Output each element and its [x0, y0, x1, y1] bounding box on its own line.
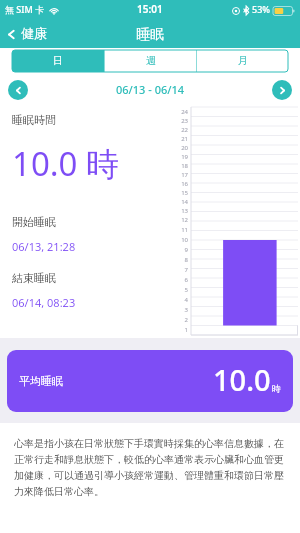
staticText: 12	[172, 216, 188, 224]
staticText: 18	[172, 162, 188, 170]
staticText: 11	[172, 226, 188, 234]
staticText: 2	[172, 316, 188, 324]
staticText: 19	[172, 153, 188, 161]
staticText: 24	[172, 108, 188, 116]
staticText: 53%	[252, 5, 270, 16]
staticText: 06/13 - 06/14	[116, 84, 185, 97]
staticText: 健康	[21, 26, 47, 42]
staticText: 結束睡眠	[12, 272, 56, 285]
button[interactable]: Previous period	[8, 80, 28, 100]
staticText: 14	[172, 198, 188, 206]
staticText: 開始睡眠	[12, 216, 56, 229]
staticText: 睡眠	[136, 26, 164, 43]
staticText: 10	[172, 236, 188, 244]
staticText: 8	[172, 256, 188, 264]
staticText: 7	[172, 266, 188, 274]
staticText: 21	[172, 135, 188, 143]
staticText: 22	[172, 126, 188, 134]
staticText: 日	[53, 55, 63, 67]
staticText: 20	[172, 144, 188, 152]
staticText: 15:01	[137, 4, 163, 16]
button[interactable]: Next period	[272, 80, 292, 100]
staticText: 9	[172, 246, 188, 254]
staticText: 4	[172, 296, 188, 304]
staticText: 15	[172, 189, 188, 197]
staticText: 平均睡眠	[19, 375, 63, 388]
button[interactable]: 月	[197, 50, 288, 72]
button[interactable]: 日	[12, 50, 104, 72]
staticText: 06/13, 21:28	[12, 241, 76, 254]
staticText: 23	[172, 117, 188, 125]
staticText: 睡眠時間	[12, 114, 56, 127]
staticText: 13	[172, 207, 188, 215]
staticText: 週	[146, 55, 156, 67]
staticText: 3	[172, 306, 188, 314]
staticText: 心率是指小孩在日常狀態下手環實時採集的心率信息數據，在正常行走和靜息狀態下，較低…	[14, 435, 286, 499]
staticText: 6	[172, 276, 188, 284]
staticText: 10.0	[213, 364, 271, 399]
button[interactable]: 健康	[0, 22, 55, 46]
button[interactable]: 週	[105, 50, 196, 72]
staticText: 時	[272, 384, 281, 395]
staticText: 17	[172, 171, 188, 179]
staticText: 月	[238, 55, 248, 67]
staticText: 無 SIM 卡	[5, 5, 45, 16]
staticText: 1	[172, 326, 188, 334]
staticText: 16	[172, 180, 188, 188]
staticText: 10.0 時	[12, 145, 120, 186]
button[interactable]: 平均睡眠	[7, 350, 293, 412]
staticText: 06/14, 08:23	[12, 297, 76, 310]
staticText: 5	[172, 286, 188, 294]
